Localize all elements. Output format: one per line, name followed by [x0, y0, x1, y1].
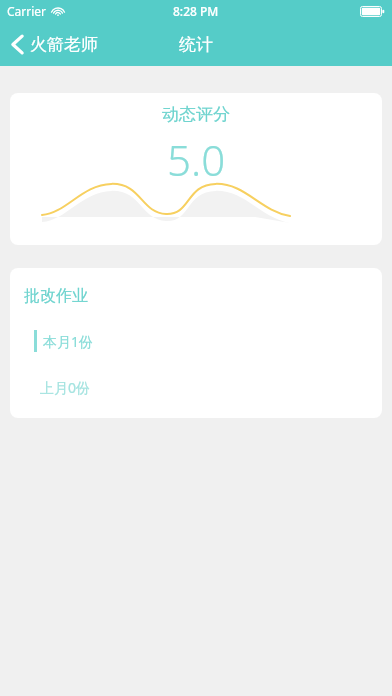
- button[interactable]: Back: [0, 28, 108, 61]
- staticText: 统计: [179, 34, 213, 55]
- staticText: 8:28 PM: [173, 3, 219, 19]
- staticText: Carrier: [7, 3, 47, 19]
- staticText: 动态评分: [162, 104, 230, 125]
- button[interactable]: 动态评分: [10, 93, 382, 245]
- staticText: 批改作业: [24, 286, 88, 306]
- button[interactable]: 批改作业: [10, 268, 382, 418]
- staticText: 本月1份: [43, 332, 94, 351]
- staticText: 火箭老师: [30, 34, 98, 55]
- staticText: 上月0份: [40, 378, 91, 397]
- staticText: 5.0: [167, 131, 226, 188]
